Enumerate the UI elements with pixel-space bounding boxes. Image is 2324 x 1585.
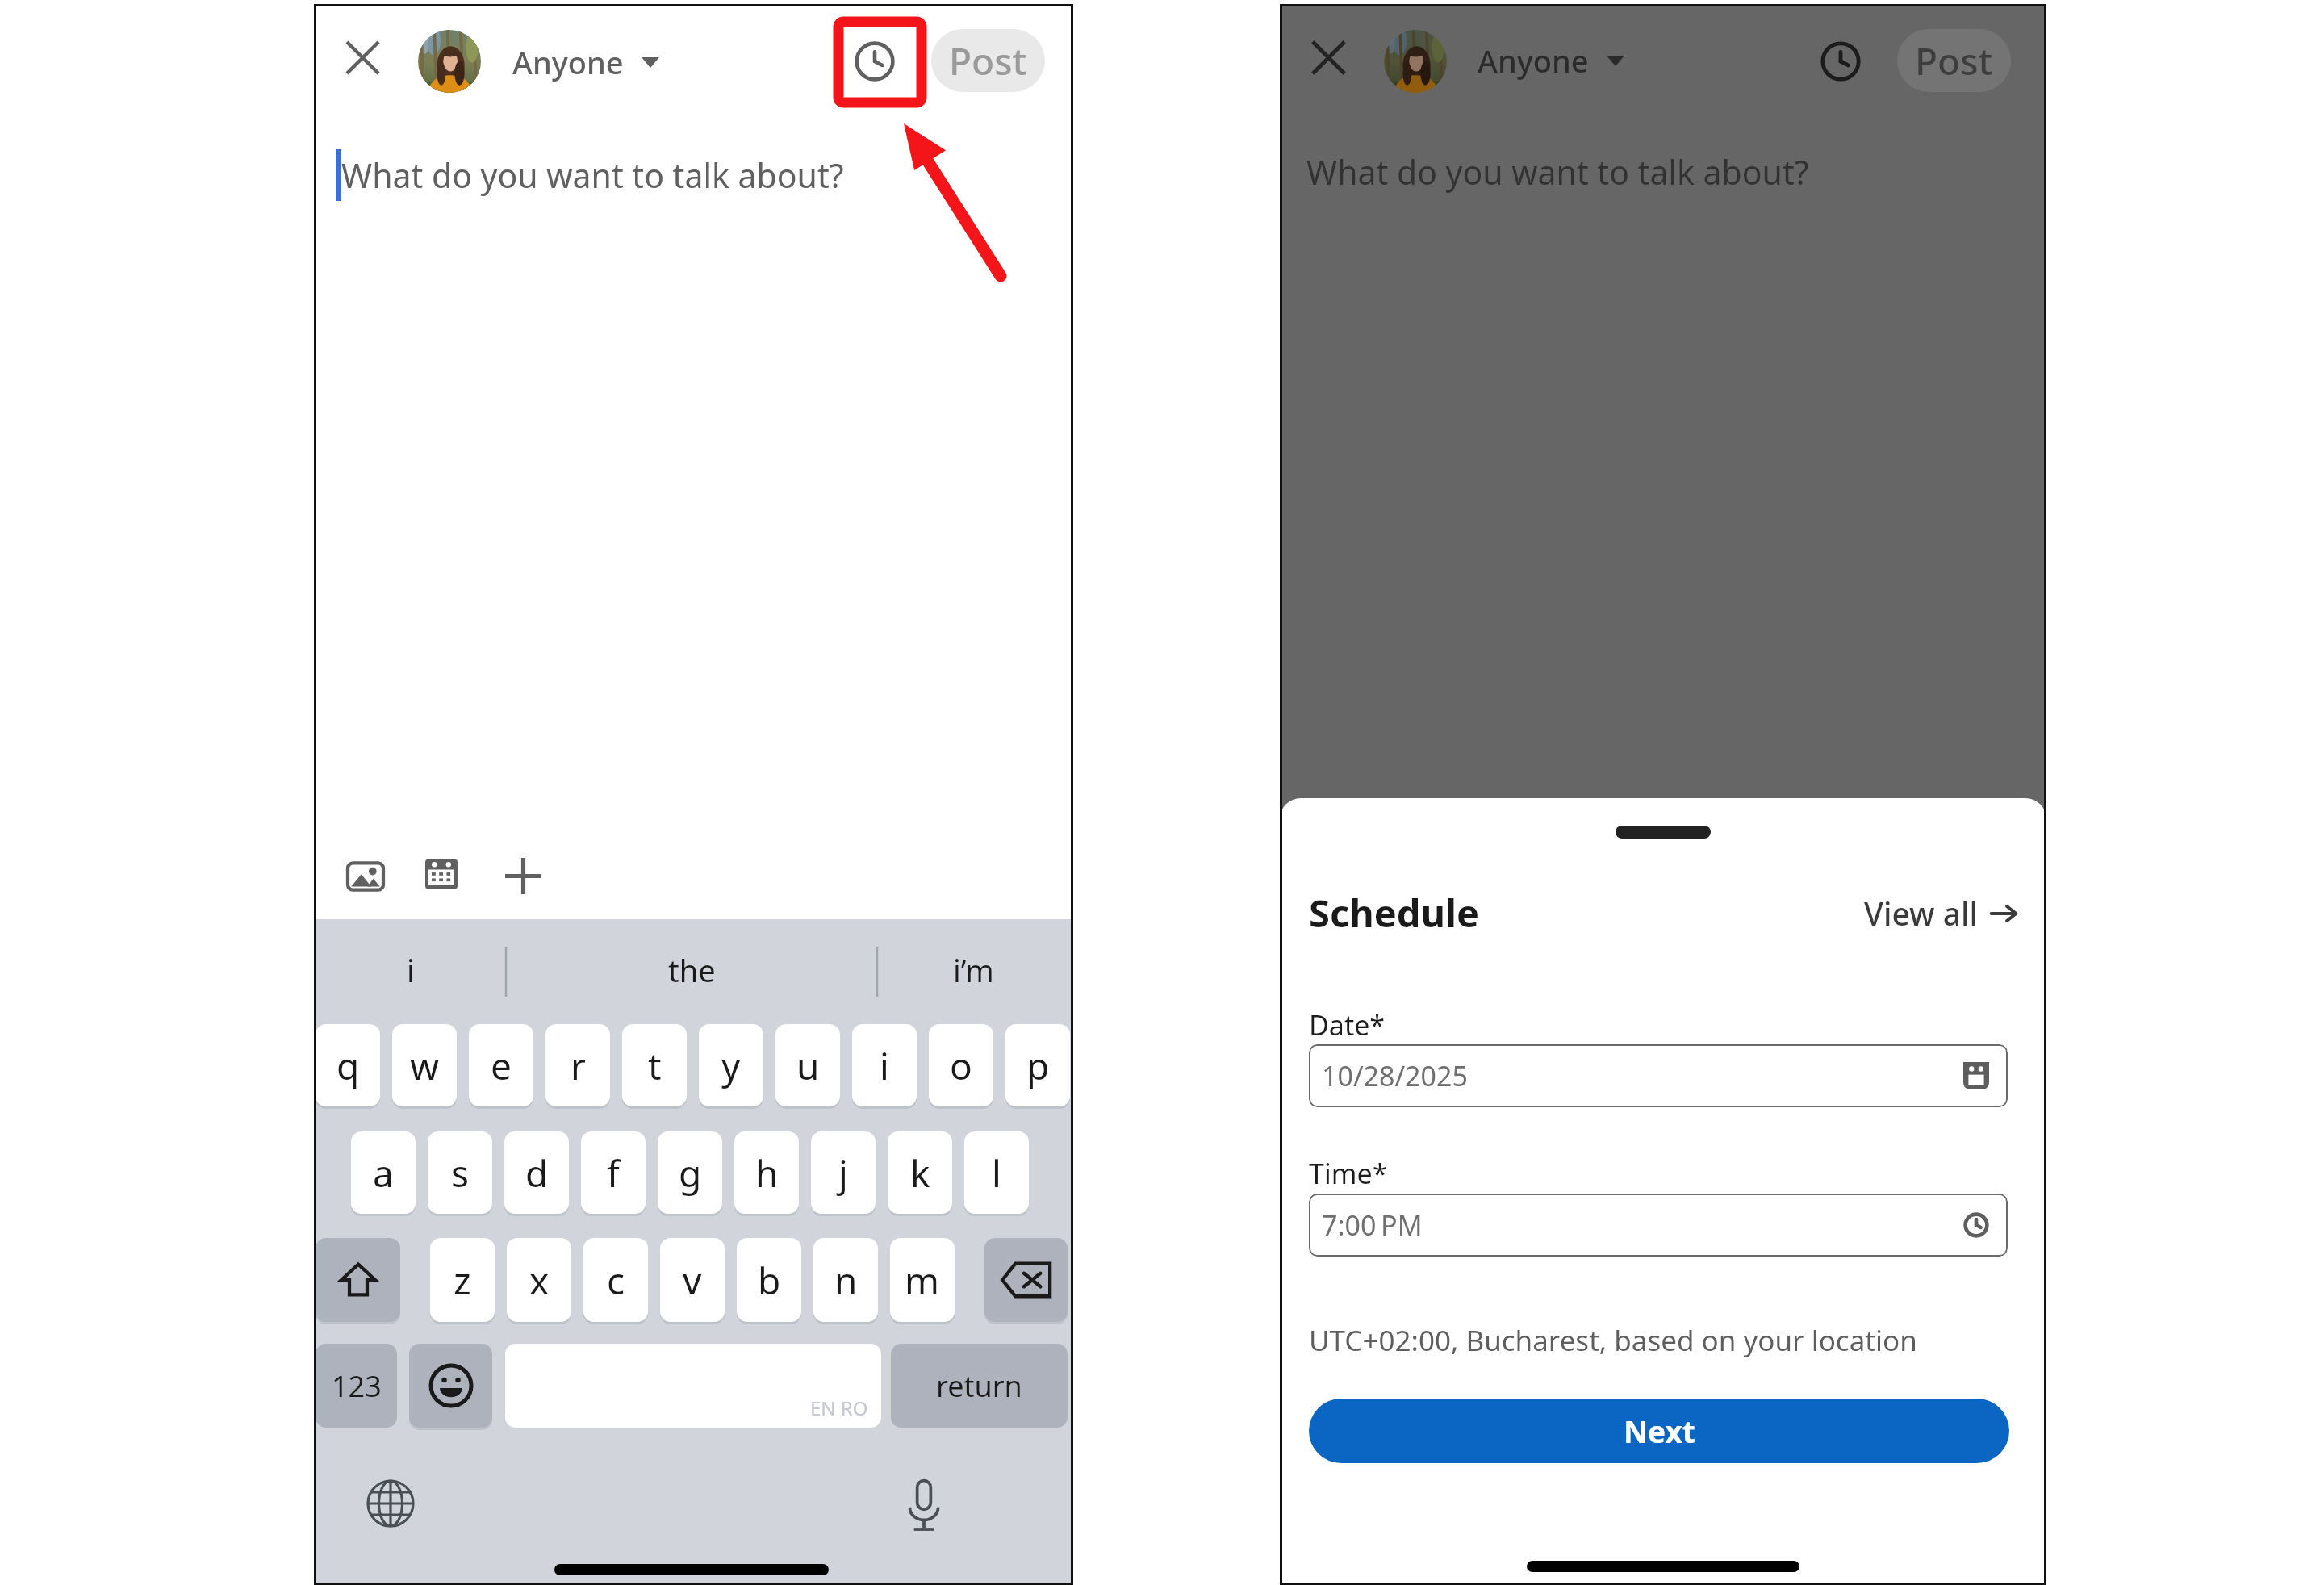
staticText: j [838, 1148, 848, 1198]
button[interactable]: k [888, 1131, 952, 1214]
button[interactable]: o [929, 1024, 993, 1106]
staticText: z [454, 1255, 471, 1306]
staticText: Schedule [1309, 887, 1480, 939]
button[interactable]: Add event [412, 843, 471, 903]
staticText: Anyone [512, 41, 624, 83]
staticText: UTC+02:00, Bucharest, based on your loca… [1309, 1321, 1917, 1360]
staticText: b [758, 1255, 781, 1306]
staticText: o [950, 1040, 972, 1091]
staticText: 123 [332, 1366, 382, 1406]
button[interactable]: s [428, 1131, 492, 1214]
staticText: w [410, 1040, 440, 1091]
button[interactable]: Emoji [409, 1344, 492, 1428]
staticText: k [910, 1148, 930, 1198]
staticText: Date* [1309, 1006, 1386, 1043]
button[interactable]: w [392, 1024, 457, 1106]
button[interactable]: Close [1301, 30, 1356, 85]
button[interactable]: d [504, 1131, 569, 1214]
staticText: i [407, 949, 415, 991]
staticText: i’m [953, 949, 994, 991]
button[interactable]: i [316, 922, 506, 1018]
button[interactable]: Schedule post [835, 22, 914, 101]
button[interactable]: the [506, 922, 877, 1018]
staticText: View all [1864, 892, 1979, 935]
staticText: g [679, 1148, 702, 1198]
staticText: Next [1624, 1411, 1695, 1451]
staticText: h [755, 1148, 779, 1198]
staticText: t [648, 1040, 662, 1091]
staticText: n [834, 1255, 858, 1306]
staticText: v [683, 1255, 702, 1306]
staticText: y [721, 1040, 741, 1091]
button[interactable]: q [316, 1024, 380, 1106]
button[interactable]: return [891, 1344, 1068, 1428]
staticText: d [525, 1148, 549, 1198]
button[interactable]: Post [931, 29, 1045, 92]
staticText: e [491, 1040, 512, 1091]
button[interactable]: y [699, 1024, 763, 1106]
button[interactable]: View all [1864, 892, 2017, 935]
button[interactable]: v [660, 1238, 725, 1322]
button[interactable]: 123 [316, 1344, 397, 1428]
staticText: m [905, 1255, 940, 1306]
staticText: a [373, 1148, 394, 1198]
button[interactable]: a [351, 1131, 416, 1214]
button[interactable]: Backspace [984, 1238, 1068, 1322]
staticText: p [1026, 1040, 1050, 1091]
button[interactable]: l [964, 1131, 1029, 1214]
button[interactable]: Post [1897, 29, 2011, 92]
staticText: Post [949, 36, 1027, 86]
button[interactable]: 7:00 PM [1309, 1194, 2008, 1257]
button[interactable]: Schedule post [1801, 22, 1880, 101]
button[interactable]: h [734, 1131, 799, 1214]
staticText: 7:00 PM [1322, 1207, 1423, 1244]
button[interactable]: n [813, 1238, 878, 1322]
staticText: r [571, 1040, 586, 1091]
button[interactable]: Anyone [512, 33, 659, 91]
button[interactable]: u [775, 1024, 840, 1106]
button[interactable]: g [658, 1131, 722, 1214]
button[interactable]: Add media [336, 847, 395, 906]
staticText: l [992, 1148, 1001, 1198]
button[interactable]: j [811, 1131, 876, 1214]
button[interactable]: i’m [877, 922, 1070, 1018]
staticText: s [451, 1148, 470, 1198]
button[interactable]: b [737, 1238, 801, 1322]
staticText: c [607, 1255, 625, 1306]
staticText: What do you want to talk about? [1306, 149, 1809, 194]
button[interactable]: t [622, 1024, 687, 1106]
button[interactable]: Close [335, 30, 390, 85]
staticText: the [668, 949, 716, 991]
button[interactable]: Anyone [1478, 33, 1624, 88]
staticText: x [529, 1255, 550, 1306]
staticText: return [936, 1366, 1022, 1406]
button[interactable]: Space [505, 1344, 881, 1428]
staticText: Anyone [1478, 40, 1589, 82]
staticText: f [607, 1148, 620, 1198]
button[interactable]: 10/28/2025 [1309, 1044, 2008, 1107]
button[interactable]: More [493, 846, 553, 905]
staticText: i [880, 1040, 889, 1091]
button[interactable]: f [581, 1131, 646, 1214]
staticText: Time* [1309, 1155, 1388, 1192]
button[interactable]: Profile [1384, 30, 1447, 93]
staticText: u [796, 1040, 820, 1091]
staticText: What do you want to talk about? [341, 153, 844, 198]
button[interactable]: e [469, 1024, 533, 1106]
button[interactable]: Next [1309, 1399, 2009, 1463]
button[interactable]: p [1005, 1024, 1070, 1106]
button[interactable]: z [430, 1238, 495, 1322]
staticText: EN RO [810, 1395, 868, 1421]
staticText: q [336, 1040, 360, 1091]
button[interactable]: Shift [316, 1238, 400, 1322]
button[interactable]: Change keyboard [363, 1476, 418, 1531]
staticText: Post [1915, 36, 1993, 86]
button[interactable]: m [890, 1238, 955, 1322]
button[interactable]: i [852, 1024, 917, 1106]
button[interactable]: Profile [418, 30, 481, 93]
button[interactable]: c [583, 1238, 648, 1322]
button[interactable]: Voice input [897, 1474, 951, 1536]
button[interactable]: r [545, 1024, 610, 1106]
staticText: 10/28/2025 [1322, 1057, 1468, 1094]
button[interactable]: x [507, 1238, 571, 1322]
